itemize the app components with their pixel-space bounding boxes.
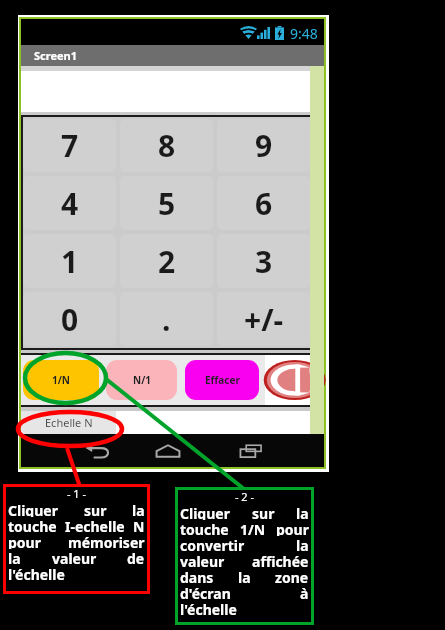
staticText: Cliquer bbox=[180, 504, 230, 520]
staticText: Echelle N bbox=[45, 415, 93, 430]
button[interactable]: 6 bbox=[217, 176, 310, 230]
staticText: I-echelle bbox=[65, 517, 125, 533]
staticText: mémoriser bbox=[68, 533, 145, 549]
staticText: 7 bbox=[61, 125, 79, 166]
button[interactable]: 1/N bbox=[23, 360, 99, 400]
button[interactable]: 8 bbox=[120, 119, 213, 172]
staticText: la bbox=[8, 549, 21, 565]
button[interactable]: 4 bbox=[23, 176, 116, 230]
staticText: dans bbox=[180, 568, 214, 584]
button[interactable]: 0 bbox=[23, 292, 116, 346]
staticText: 1 bbox=[61, 241, 79, 282]
staticText: la bbox=[238, 568, 251, 584]
button[interactable]: 3 bbox=[217, 234, 310, 288]
staticText: pour bbox=[8, 533, 41, 549]
staticText: valeur bbox=[180, 552, 225, 568]
staticText: 9:48 bbox=[290, 24, 318, 43]
button[interactable]: Screen1 bbox=[21, 45, 324, 66]
staticText: 1/N bbox=[52, 373, 70, 387]
staticText: - 1 - bbox=[8, 486, 145, 501]
staticText: 2 bbox=[158, 241, 176, 282]
staticText: 0 bbox=[61, 299, 79, 340]
staticText: N bbox=[133, 517, 145, 533]
staticText: 3 bbox=[255, 241, 273, 282]
staticText: Cliquer bbox=[8, 501, 58, 517]
staticText: valeur bbox=[52, 549, 97, 565]
staticText: +/- bbox=[244, 299, 284, 340]
button[interactable]: Back bbox=[81, 435, 113, 467]
button[interactable]: N/1 bbox=[106, 360, 177, 400]
staticText: la bbox=[296, 536, 309, 552]
staticText: sur bbox=[252, 504, 275, 520]
button[interactable]: +/- bbox=[217, 292, 310, 346]
staticText: l'échelle bbox=[8, 565, 65, 581]
staticText: sur bbox=[84, 501, 107, 517]
staticText: zone bbox=[275, 568, 309, 584]
staticText: Screen1 bbox=[34, 48, 78, 63]
staticText: pour bbox=[276, 520, 309, 536]
button[interactable]: Quitter bbox=[265, 355, 310, 405]
staticText: 9 bbox=[255, 125, 273, 166]
staticText: touche bbox=[8, 517, 57, 533]
staticText: de bbox=[127, 549, 145, 565]
button[interactable]: Effacer bbox=[185, 360, 259, 400]
button[interactable]: Echelle N bbox=[21, 411, 116, 434]
staticText: la bbox=[132, 501, 145, 517]
staticText: 6 bbox=[255, 183, 273, 224]
staticText: convertir bbox=[180, 536, 245, 552]
button[interactable]: 9 bbox=[217, 119, 310, 172]
staticText: Effacer bbox=[205, 373, 240, 387]
button[interactable]: 7 bbox=[23, 119, 116, 172]
button[interactable]: . bbox=[120, 292, 213, 346]
button[interactable]: Home bbox=[152, 435, 184, 467]
staticText: 4 bbox=[61, 183, 79, 224]
button[interactable]: 5 bbox=[120, 176, 213, 230]
staticText: d'écran bbox=[180, 584, 231, 600]
button[interactable]: Recent apps bbox=[235, 435, 267, 467]
button[interactable]: 2 bbox=[120, 234, 213, 288]
staticText: 1/N bbox=[240, 520, 266, 536]
staticText: 8 bbox=[158, 125, 176, 166]
staticText: à bbox=[300, 584, 309, 600]
staticText: la bbox=[296, 504, 309, 520]
staticText: touche bbox=[180, 520, 229, 536]
staticText: l'échelle bbox=[180, 600, 237, 616]
staticText: affichée bbox=[252, 552, 309, 568]
button[interactable]: 1 bbox=[23, 234, 116, 288]
staticText: N/1 bbox=[133, 373, 151, 387]
staticText: . bbox=[162, 299, 171, 340]
staticText: 5 bbox=[158, 183, 176, 224]
staticText: - 2 - bbox=[180, 489, 309, 504]
